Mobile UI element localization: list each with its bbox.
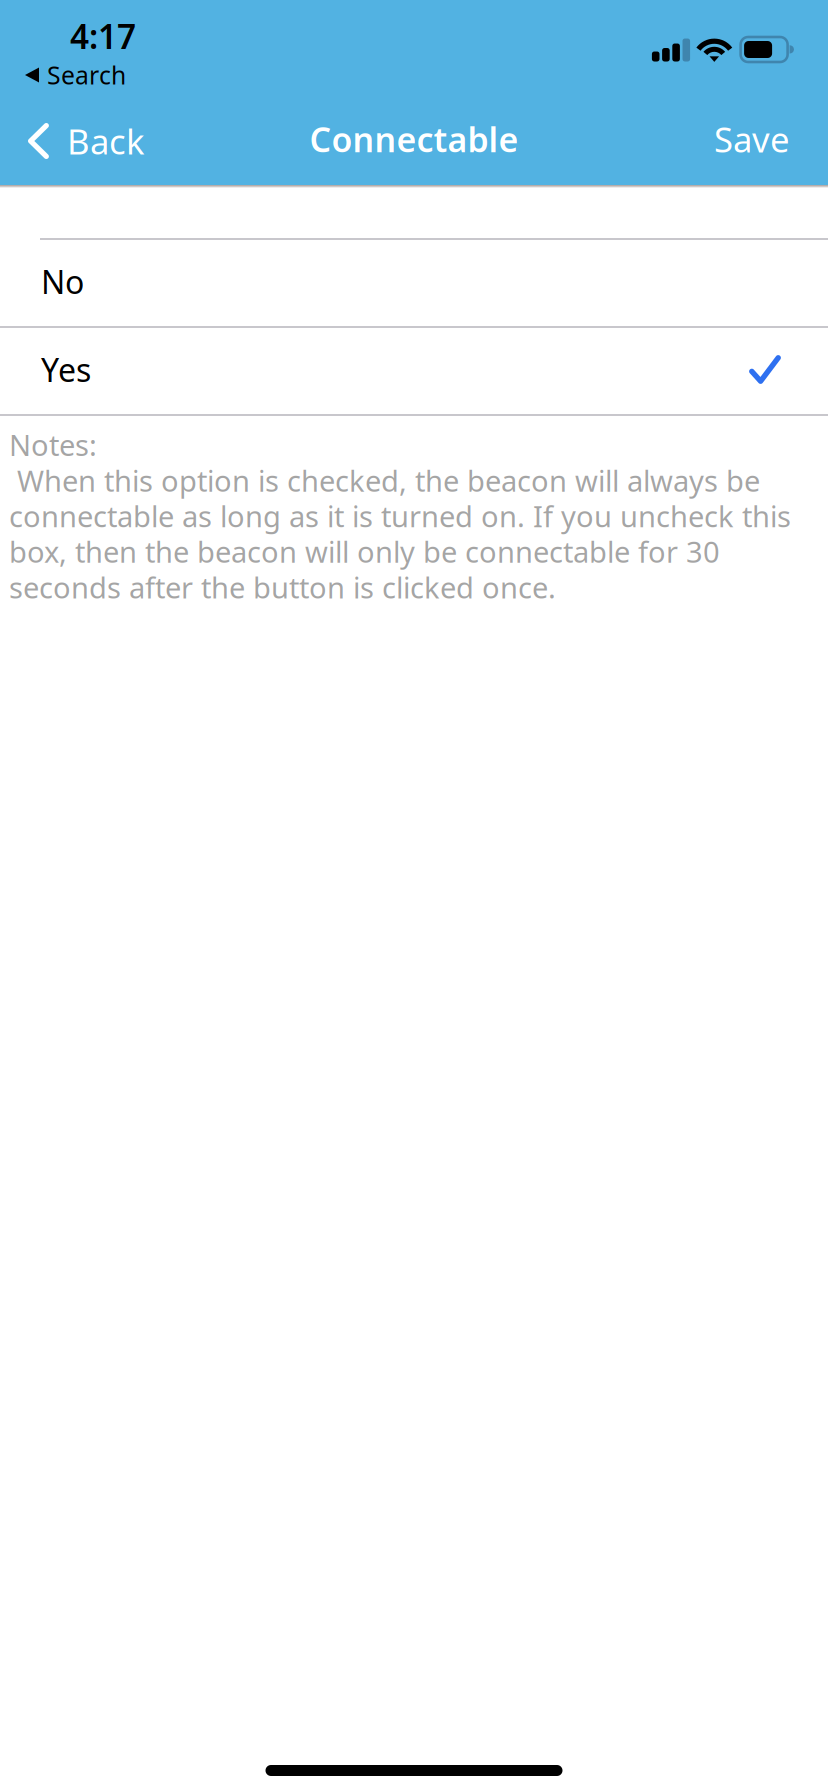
staticText: Notes: [9, 425, 97, 465]
button[interactable]: No [0, 240, 828, 326]
staticText: Save [714, 115, 790, 163]
staticText: seconds after the button is clicked once… [9, 567, 556, 607]
button[interactable]: Search [0, 60, 140, 90]
staticText: connectable as long as it is turned on. … [9, 496, 791, 536]
staticText: No [41, 260, 84, 303]
staticText: Search [47, 58, 126, 92]
button[interactable]: Back [0, 97, 169, 185]
staticText: Connectable [309, 116, 518, 162]
staticText: When this option is checked, the beacon … [9, 461, 760, 500]
staticText: Back [67, 117, 145, 165]
staticText: Yes [41, 348, 91, 391]
button[interactable]: Save [690, 95, 828, 183]
button[interactable]: Yes [0, 328, 828, 414]
staticText: box, then the beacon will only be connec… [9, 532, 720, 571]
staticText: 4:17 [70, 13, 136, 59]
